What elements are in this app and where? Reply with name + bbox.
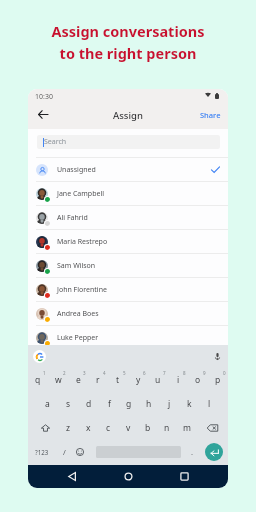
staticText: 6 bbox=[143, 370, 146, 376]
staticText: Ali Fahrid bbox=[57, 213, 88, 223]
staticText: x bbox=[86, 422, 91, 434]
button[interactable]: x bbox=[78, 416, 98, 440]
button[interactable]: e bbox=[68, 368, 88, 392]
staticText: Search bbox=[44, 137, 67, 147]
staticText: h bbox=[146, 398, 152, 410]
button[interactable]: y bbox=[128, 368, 148, 392]
staticText: Assign conversations to the right person bbox=[51, 21, 205, 63]
staticText: j bbox=[168, 398, 171, 410]
button[interactable]: Backspace bbox=[203, 416, 221, 440]
button[interactable]: Ali Fahrid bbox=[28, 206, 228, 229]
button[interactable]: j bbox=[159, 392, 179, 416]
button[interactable]: Maria Restrepo bbox=[28, 230, 228, 253]
staticText: 3 bbox=[83, 370, 86, 376]
staticText: s bbox=[66, 398, 71, 410]
button[interactable]: Shift bbox=[36, 416, 54, 440]
staticText: d bbox=[86, 398, 92, 410]
button[interactable]: h bbox=[139, 392, 159, 416]
button[interactable]: d bbox=[79, 392, 99, 416]
button[interactable]: q bbox=[28, 368, 48, 392]
button[interactable]: / bbox=[57, 440, 71, 464]
button[interactable]: w bbox=[48, 368, 68, 392]
staticText: 9 bbox=[203, 370, 206, 376]
button[interactable]: a bbox=[37, 392, 58, 416]
button[interactable]: Share bbox=[193, 106, 228, 124]
button[interactable]: i bbox=[168, 368, 188, 392]
staticText: o bbox=[195, 374, 201, 386]
staticText: l bbox=[208, 398, 211, 410]
button[interactable]: . bbox=[185, 440, 199, 464]
staticText: a bbox=[45, 398, 50, 410]
staticText: Andrea Boes bbox=[57, 309, 99, 319]
button[interactable]: ?123 bbox=[32, 440, 52, 464]
button[interactable]: o bbox=[188, 368, 208, 392]
button[interactable]: Andrea Boes bbox=[28, 302, 228, 325]
button[interactable]: Back bbox=[34, 106, 51, 123]
staticText: 4 bbox=[103, 370, 106, 376]
button[interactable]: Sam Wilson bbox=[28, 254, 228, 277]
staticText: 10:30 bbox=[35, 92, 53, 102]
staticText: Maria Restrepo bbox=[57, 237, 108, 247]
button[interactable]: m bbox=[177, 416, 197, 440]
button[interactable]: Voice input bbox=[212, 352, 222, 362]
button[interactable]: v bbox=[118, 416, 138, 440]
staticText: w bbox=[55, 374, 62, 386]
staticText: John Florentine bbox=[57, 285, 107, 295]
button[interactable]: p bbox=[208, 368, 228, 392]
staticText: 2 bbox=[63, 370, 66, 376]
button[interactable]: Jane Campbell bbox=[28, 182, 228, 205]
staticText: c bbox=[106, 422, 111, 434]
staticText: 5 bbox=[123, 370, 126, 376]
button[interactable]: r bbox=[88, 368, 108, 392]
staticText: Unassigned bbox=[57, 165, 96, 175]
staticText: 0 bbox=[223, 370, 226, 376]
button[interactable]: Search bbox=[37, 135, 220, 149]
staticText: p bbox=[215, 374, 221, 386]
staticText: r bbox=[96, 374, 100, 386]
button[interactable]: l bbox=[199, 392, 219, 416]
staticText: b bbox=[145, 422, 151, 434]
button[interactable]: z bbox=[58, 416, 78, 440]
staticText: i bbox=[177, 374, 180, 386]
staticText: 8 bbox=[183, 370, 186, 376]
button[interactable]: s bbox=[58, 392, 79, 416]
staticText: g bbox=[126, 398, 132, 410]
button[interactable]: Emoji bbox=[73, 440, 87, 464]
button[interactable]: c bbox=[98, 416, 118, 440]
staticText: u bbox=[155, 374, 161, 386]
button[interactable]: k bbox=[179, 392, 199, 416]
button[interactable]: g bbox=[119, 392, 139, 416]
button[interactable]: Back bbox=[65, 465, 79, 488]
button[interactable]: f bbox=[99, 392, 119, 416]
staticText: y bbox=[136, 374, 141, 386]
staticText: 1 bbox=[43, 370, 46, 376]
button[interactable]: Google bbox=[33, 350, 46, 363]
staticText: e bbox=[76, 374, 81, 386]
staticText: ?123 bbox=[35, 448, 49, 456]
staticText: f bbox=[108, 398, 111, 410]
staticText: / bbox=[63, 447, 66, 457]
button[interactable]: Home bbox=[121, 465, 135, 488]
staticText: k bbox=[187, 398, 192, 410]
staticText: Jane Campbell bbox=[57, 189, 104, 199]
button[interactable]: t bbox=[108, 368, 128, 392]
button[interactable]: John Florentine bbox=[28, 278, 228, 301]
button[interactable]: u bbox=[148, 368, 168, 392]
staticText: q bbox=[35, 374, 41, 386]
button[interactable]: n bbox=[157, 416, 177, 440]
button[interactable]: Recents bbox=[177, 465, 191, 488]
staticText: v bbox=[126, 422, 131, 434]
staticText: Assign bbox=[113, 109, 143, 122]
button[interactable]: Enter bbox=[205, 443, 223, 461]
button[interactable]: Luke Pepper bbox=[28, 326, 228, 349]
staticText: 7 bbox=[163, 370, 166, 376]
staticText: Share bbox=[200, 110, 221, 120]
button[interactable]: Unassigned bbox=[28, 158, 228, 181]
button[interactable]: b bbox=[138, 416, 158, 440]
staticText: z bbox=[66, 422, 70, 434]
staticText: m bbox=[183, 422, 191, 434]
staticText: t bbox=[116, 374, 120, 386]
staticText: n bbox=[164, 422, 170, 434]
staticText: Luke Pepper bbox=[57, 333, 99, 343]
